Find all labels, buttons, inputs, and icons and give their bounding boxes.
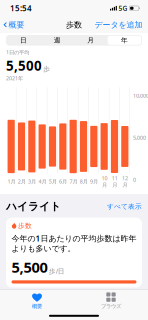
staticText: 5,000 <box>133 134 146 141</box>
staticText: 11月 <box>111 175 117 188</box>
staticText: データを追加 <box>94 20 142 30</box>
staticText: 日 <box>20 36 27 44</box>
staticText: 今年の1日あたりの平均歩数は昨年よりも多いです。 <box>11 233 136 253</box>
staticText: 概要 <box>32 303 42 310</box>
staticText: ハイライト <box>6 200 61 213</box>
staticText: ブラウズ <box>101 303 121 310</box>
staticText: 6月 <box>59 178 67 185</box>
staticText: 歩/日 <box>49 267 65 276</box>
staticText: 3月 <box>28 178 36 185</box>
button[interactable]: 週 <box>40 36 74 45</box>
staticText: 歩数 <box>18 222 32 230</box>
button[interactable]: 概要 <box>0 289 74 309</box>
staticText: 5月 <box>48 178 56 185</box>
staticText: 年 <box>121 36 128 44</box>
staticText: 5,500 <box>11 257 47 277</box>
button[interactable]: ブラウズ <box>74 289 148 310</box>
button[interactable]: 歩数 <box>6 218 142 287</box>
staticText: すべて表示 <box>107 202 142 211</box>
staticText: 10月 <box>101 175 107 188</box>
staticText: 月 <box>87 36 94 44</box>
staticText: 7月 <box>69 178 77 185</box>
button[interactable]: 概要 <box>0 18 24 32</box>
staticText: 1日の平均 <box>6 49 29 56</box>
staticText: 9月 <box>90 178 98 185</box>
button[interactable]: 年 <box>108 36 141 45</box>
button[interactable]: すべて表示 <box>107 202 142 211</box>
staticText: 歩 <box>43 65 50 73</box>
staticText: 週 <box>54 36 61 44</box>
staticText: 2月 <box>17 178 25 185</box>
staticText: 8月 <box>79 178 87 185</box>
staticText: 15:54 <box>10 3 32 13</box>
staticText: 歩数 <box>66 20 82 30</box>
staticText: 10,000 <box>133 92 148 99</box>
staticText: 0 <box>133 176 136 183</box>
staticText: 4月 <box>38 178 46 185</box>
staticText: 2021年 <box>6 75 23 82</box>
staticText: 概要 <box>8 20 24 30</box>
button[interactable]: 日 <box>7 36 40 45</box>
button[interactable]: 月 <box>74 36 108 45</box>
staticText: 12月 <box>122 175 128 188</box>
staticText: 5G <box>118 4 127 13</box>
staticText: 5,500 <box>6 57 42 74</box>
staticText: 1月 <box>7 178 15 185</box>
button[interactable]: データを追加 <box>94 18 148 32</box>
